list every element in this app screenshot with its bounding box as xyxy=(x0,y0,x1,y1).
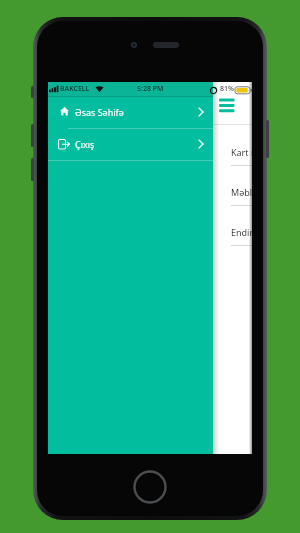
staticText: Əsas Səhifə xyxy=(75,106,124,118)
button[interactable]: Əsas Səhifə xyxy=(48,97,213,128)
staticText: Endirim xyxy=(231,226,252,238)
staticText: Məbləğ xyxy=(231,186,252,198)
button[interactable]: Çıxış xyxy=(48,129,213,160)
button[interactable] xyxy=(216,96,238,116)
staticText: BAKCELL xyxy=(60,84,90,94)
staticText: Çıxış xyxy=(75,138,95,150)
staticText: Kart nömrəsi xyxy=(231,146,252,158)
staticText: 5:28 PM xyxy=(137,84,164,94)
staticText: 81% xyxy=(220,84,234,94)
